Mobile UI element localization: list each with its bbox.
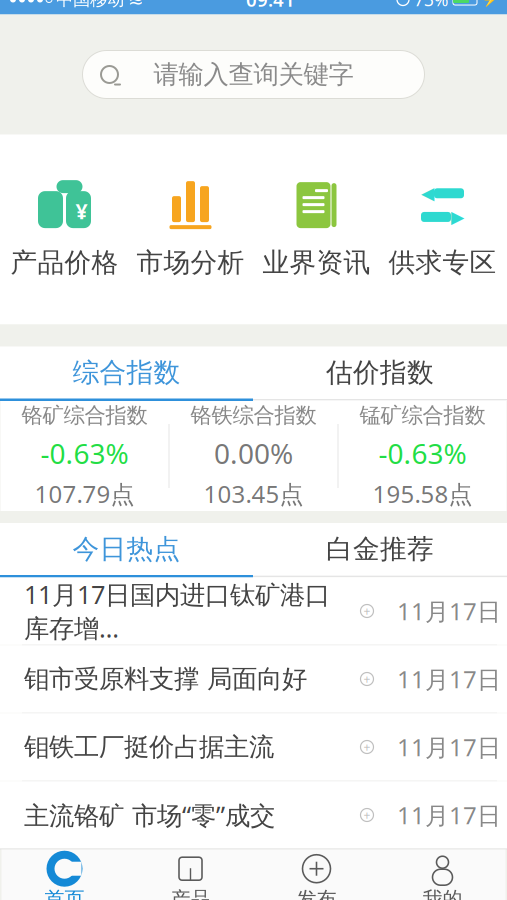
staticText: 锰矿综合指数 bbox=[359, 402, 485, 429]
staticText: + bbox=[363, 739, 370, 755]
button[interactable]: 我的 bbox=[379, 849, 505, 900]
staticText: 107.79点 bbox=[34, 478, 134, 510]
staticText: 我的 bbox=[422, 887, 462, 900]
staticText: 73% bbox=[414, 0, 448, 11]
button[interactable]: 业界资讯 bbox=[253, 144, 379, 314]
staticText: 11月17日 bbox=[397, 595, 501, 627]
staticText: 市场分析 bbox=[136, 246, 244, 279]
staticText: 首页 bbox=[44, 887, 84, 900]
staticText: 钼市受原料支撑 局面向好 bbox=[24, 663, 307, 694]
button[interactable]: 11月17日国内进口钛矿港口库存增… bbox=[0, 577, 507, 644]
staticText: ⚡ bbox=[482, 0, 499, 7]
staticText: -0.63% bbox=[40, 435, 128, 472]
staticText: 11月17日国内进口钛矿港口库存增… bbox=[24, 577, 330, 645]
button[interactable]: 市场分析 bbox=[127, 144, 253, 314]
staticText: ¥ bbox=[75, 197, 87, 225]
button[interactable]: 请输入查询关键字 bbox=[82, 50, 424, 98]
staticText: 铬矿综合指数 bbox=[21, 402, 147, 429]
button[interactable]: 钼市受原料支撑 局面向好 bbox=[0, 645, 507, 712]
button[interactable]: ◀ bbox=[379, 144, 505, 314]
staticText: -0.63% bbox=[378, 435, 466, 472]
button[interactable]: 估价指数 bbox=[253, 346, 507, 398]
staticText: 11月17日 bbox=[397, 663, 501, 695]
staticText: 11月17日 bbox=[397, 799, 501, 831]
staticText: 发布 bbox=[296, 887, 336, 900]
staticText: 0.00% bbox=[214, 435, 293, 472]
staticText: ▶ bbox=[451, 207, 464, 227]
staticText: 主流铬矿 市场“零”成交 bbox=[24, 798, 275, 832]
staticText: ≋ bbox=[128, 0, 144, 10]
staticText: + bbox=[363, 807, 370, 823]
staticText: 09:41 bbox=[246, 0, 295, 12]
button[interactable]: 综合指数 bbox=[0, 346, 253, 398]
staticText: 产品价格 bbox=[10, 246, 118, 279]
staticText: + bbox=[363, 603, 370, 619]
staticText: ◀ bbox=[421, 183, 434, 203]
button[interactable]: 主流铬矿 市场“零”成交 bbox=[0, 781, 507, 848]
button[interactable]: 钼铁工厂挺价占据主流 bbox=[0, 713, 507, 780]
staticText: 195.58点 bbox=[372, 478, 472, 510]
staticText: 供求专区 bbox=[388, 246, 496, 279]
staticText: 请输入查询关键字 bbox=[153, 59, 353, 90]
button[interactable]: 产品 bbox=[127, 849, 253, 900]
staticText: 11月17日 bbox=[397, 731, 501, 763]
button[interactable]: 发布 bbox=[253, 849, 379, 900]
staticText: 产品 bbox=[170, 887, 210, 900]
staticText: 中国移动 bbox=[56, 0, 124, 10]
staticText: 铬铁综合指数 bbox=[190, 402, 316, 429]
button[interactable]: 今日热点 bbox=[0, 523, 253, 575]
staticText: + bbox=[363, 671, 370, 687]
button[interactable]: 白金推荐 bbox=[253, 523, 507, 575]
staticText: 白金推荐 bbox=[326, 533, 434, 565]
button[interactable]: 首页 bbox=[1, 849, 127, 900]
staticText: 业界资讯 bbox=[262, 246, 370, 279]
staticText: 103.45点 bbox=[203, 478, 303, 510]
staticText: 估价指数 bbox=[326, 356, 434, 389]
staticText: 钼铁工厂挺价占据主流 bbox=[24, 731, 274, 762]
button[interactable]: ¥ bbox=[1, 144, 127, 314]
staticText: 综合指数 bbox=[72, 356, 180, 389]
staticText: 今日热点 bbox=[72, 533, 180, 565]
